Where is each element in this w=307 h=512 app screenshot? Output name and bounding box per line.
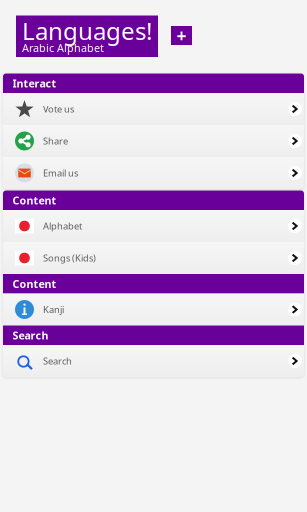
staticText: Languages!: [22, 15, 152, 47]
staticText: Songs (Kids): [43, 252, 96, 264]
button[interactable]: Alphabet: [3, 210, 304, 242]
staticText: Content: [12, 277, 56, 291]
button[interactable]: Kanji: [3, 293, 304, 325]
staticText: Search: [43, 355, 72, 367]
staticText: +: [176, 24, 186, 47]
button[interactable]: Email us: [3, 157, 304, 189]
button[interactable]: Search: [3, 345, 304, 377]
staticText: Content: [12, 193, 56, 207]
button[interactable]: Songs (Kids): [3, 242, 304, 274]
staticText: Arabic Alphabet: [22, 41, 104, 55]
staticText: Email us: [43, 167, 78, 179]
staticText: Kanji: [43, 303, 64, 316]
staticText: Search: [12, 328, 48, 342]
button[interactable]: Add: [171, 26, 192, 45]
staticText: Interact: [12, 76, 56, 90]
button[interactable]: Vote us: [3, 93, 304, 125]
button[interactable]: Share: [3, 125, 304, 157]
staticText: Alphabet: [43, 220, 82, 232]
staticText: Share: [43, 135, 68, 147]
staticText: Vote us: [43, 103, 74, 115]
